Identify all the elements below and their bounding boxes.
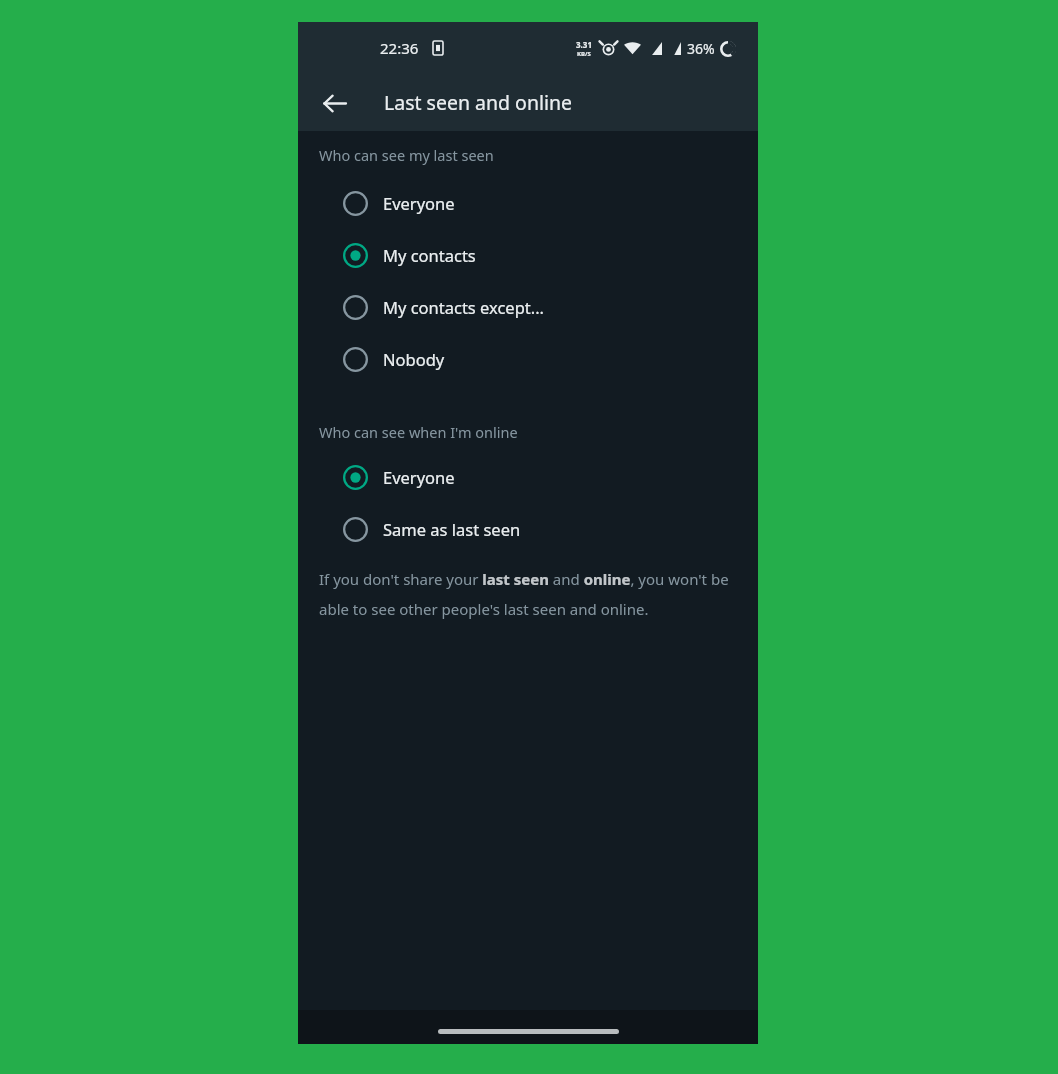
staticText: KB/S (577, 50, 591, 58)
staticText: If you don't share your last seen and on… (319, 569, 734, 619)
staticText: 36% (687, 39, 715, 58)
button[interactable]: Everyone (298, 451, 758, 503)
button[interactable]: Everyone (298, 177, 758, 229)
staticText: Nobody (383, 348, 445, 370)
staticText: 3.31 (576, 39, 592, 50)
button[interactable]: My contacts except... (298, 281, 758, 333)
button[interactable]: Back (314, 83, 354, 123)
staticText: 22:36 (380, 38, 419, 58)
staticText: Everyone (383, 192, 455, 214)
staticText: Who can see my last seen (319, 145, 494, 165)
button[interactable]: My contacts (298, 229, 758, 281)
button[interactable]: Nobody (298, 333, 758, 385)
staticText: Who can see when I'm online (319, 422, 518, 442)
staticText: Last seen and online (384, 89, 573, 116)
staticText: My contacts (383, 244, 476, 266)
staticText: Everyone (383, 466, 455, 488)
staticText: Same as last seen (383, 518, 521, 540)
button[interactable]: Same as last seen (298, 503, 758, 555)
staticText: My contacts except... (383, 296, 545, 318)
